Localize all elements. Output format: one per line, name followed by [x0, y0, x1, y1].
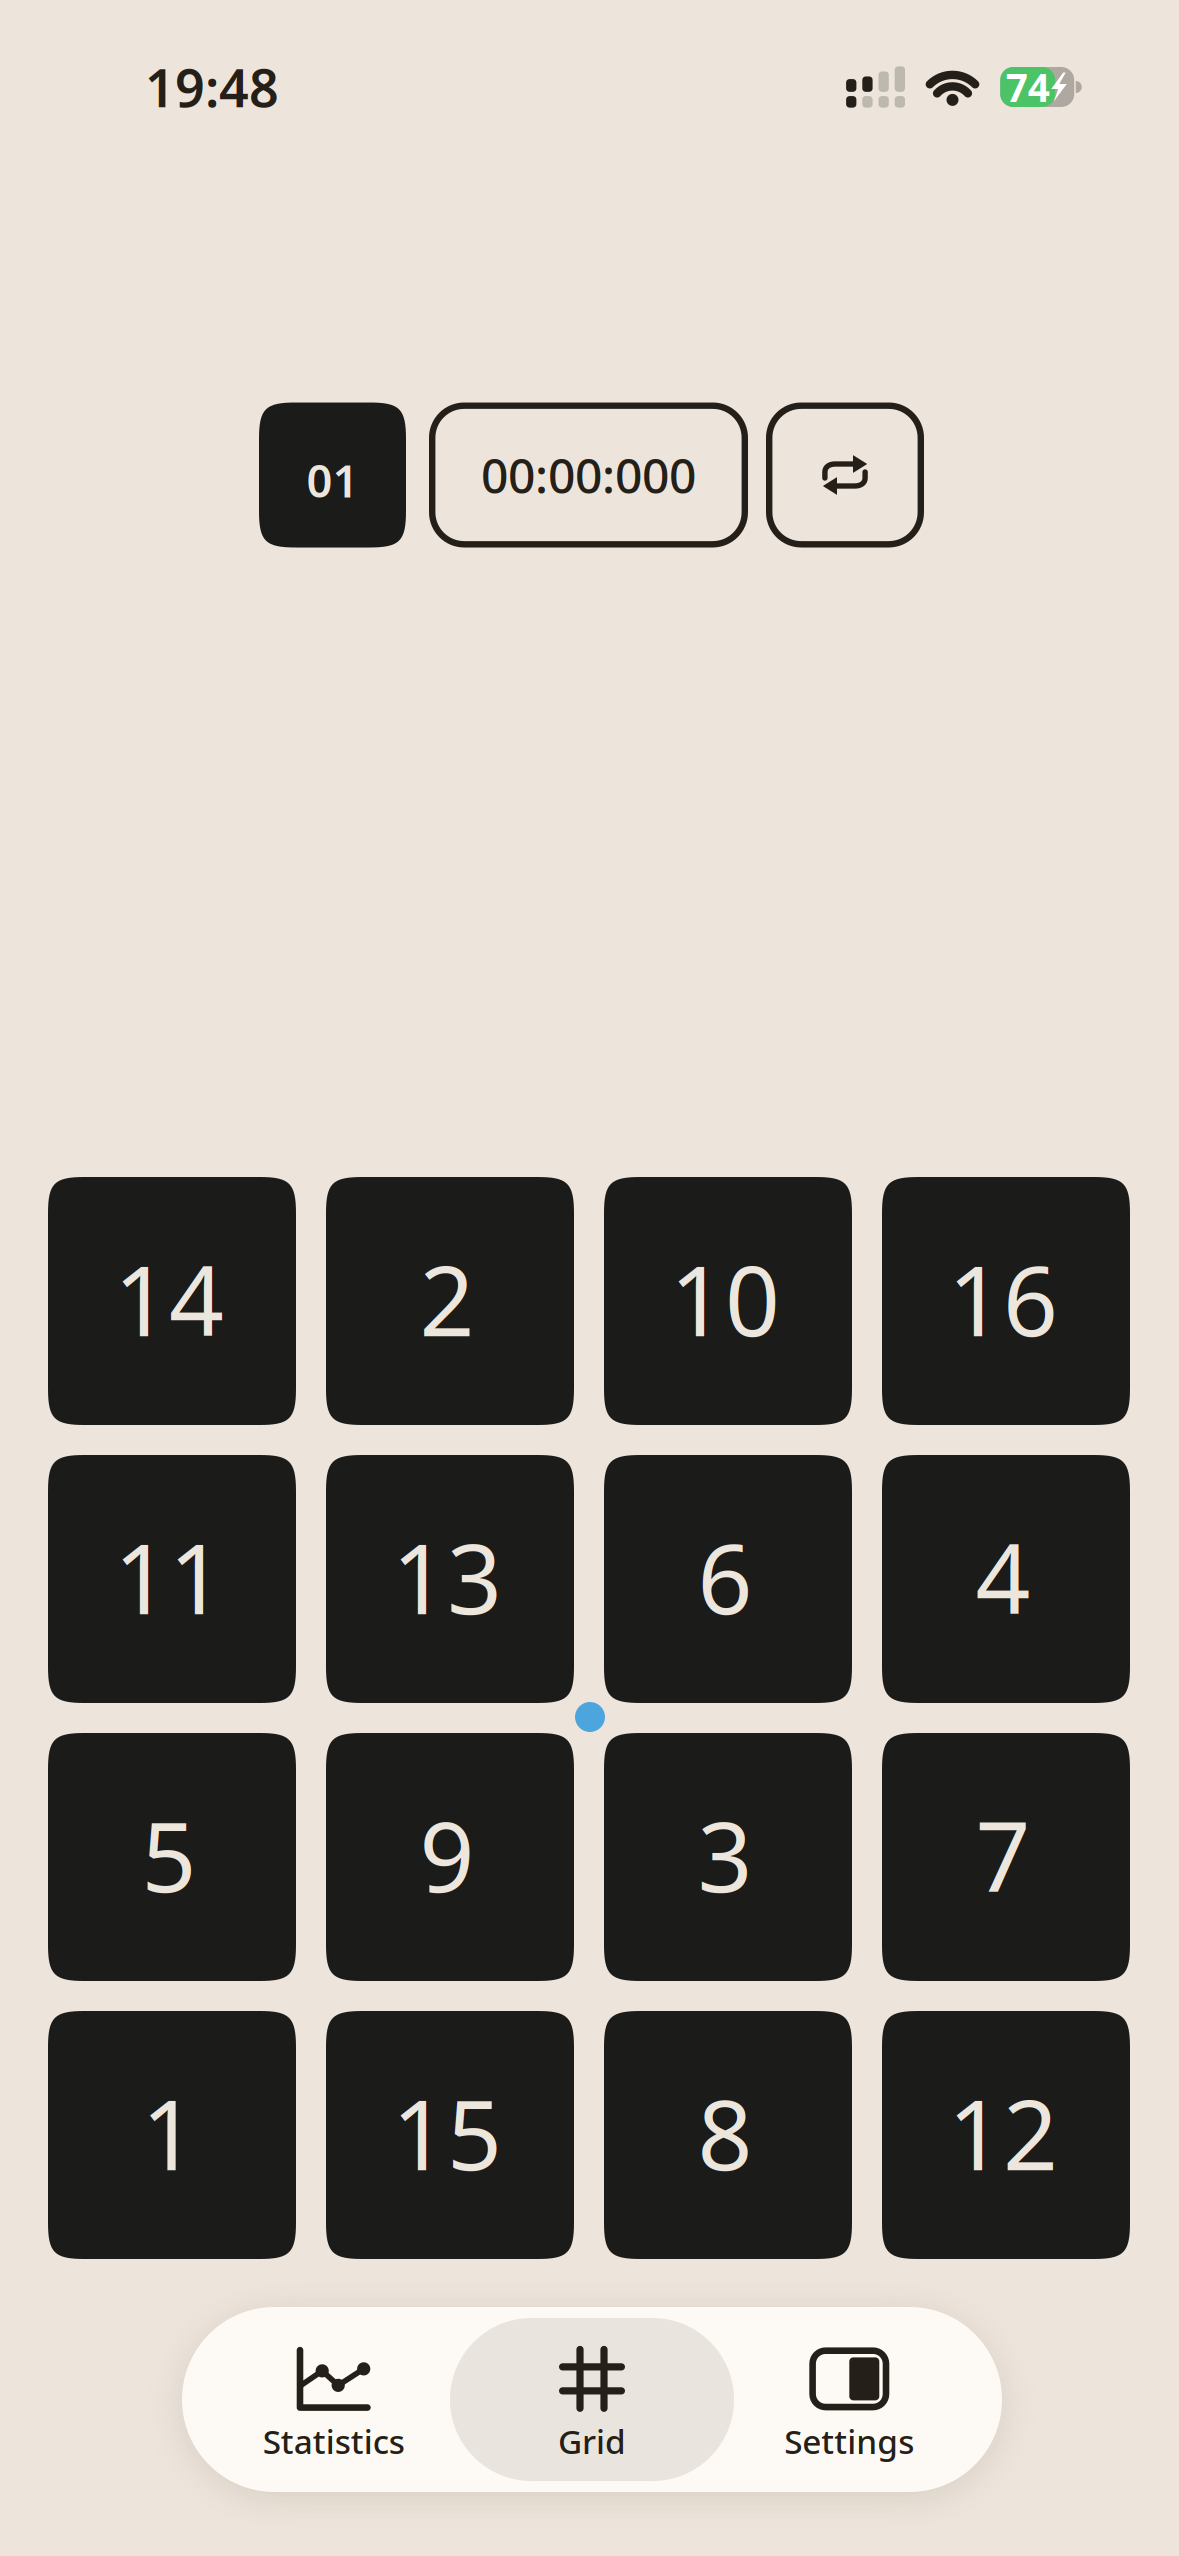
button[interactable]: 2: [326, 1177, 574, 1425]
staticText: 16: [948, 1235, 1058, 1363]
button[interactable]: 13: [326, 1455, 574, 1703]
button[interactable]: 9: [326, 1733, 574, 1981]
staticText: Settings: [784, 2419, 914, 2463]
staticText: 4: [975, 1513, 1030, 1641]
staticText: 13: [392, 1513, 502, 1641]
button[interactable]: 12: [882, 2011, 1130, 2259]
button[interactable]: 10: [604, 1177, 852, 1425]
button[interactable]: Statistics: [182, 2307, 455, 2492]
staticText: 7: [975, 1791, 1030, 1919]
button[interactable]: Settings: [729, 2307, 1002, 2492]
staticText: 8: [697, 2069, 752, 2197]
button[interactable]: 6: [604, 1455, 852, 1703]
button[interactable]: Grid: [455, 2307, 729, 2492]
staticText: 10: [670, 1235, 780, 1363]
staticText: 01: [306, 450, 358, 510]
button[interactable]: 7: [882, 1733, 1130, 1981]
staticText: 12: [948, 2069, 1058, 2197]
staticText: Statistics: [263, 2419, 405, 2463]
button[interactable]: 01: [259, 402, 406, 547]
staticText: 9: [419, 1791, 474, 1919]
staticText: 6: [697, 1513, 752, 1641]
button[interactable]: 4: [882, 1455, 1130, 1703]
staticText: 2: [419, 1235, 474, 1363]
staticText: 15: [392, 2069, 502, 2197]
button[interactable]: 16: [882, 1177, 1130, 1425]
staticText: 5: [141, 1791, 196, 1919]
button[interactable]: 00:00:000: [429, 402, 748, 547]
button[interactable]: 1: [48, 2011, 296, 2259]
button[interactable]: 8: [604, 2011, 852, 2259]
staticText: 11: [114, 1513, 224, 1641]
staticText: 3: [697, 1791, 752, 1919]
staticText: 1: [141, 2069, 196, 2197]
staticText: 74: [1006, 61, 1050, 113]
button[interactable]: 5: [48, 1733, 296, 1981]
staticText: 19:48: [145, 52, 279, 122]
button[interactable]: Repeat: [766, 402, 924, 547]
button[interactable]: 11: [48, 1455, 296, 1703]
button[interactable]: 3: [604, 1733, 852, 1981]
button[interactable]: 15: [326, 2011, 574, 2259]
staticText: 14: [114, 1235, 224, 1363]
staticText: Grid: [558, 2419, 626, 2463]
button[interactable]: 14: [48, 1177, 296, 1425]
staticText: 00:00:000: [481, 443, 696, 507]
